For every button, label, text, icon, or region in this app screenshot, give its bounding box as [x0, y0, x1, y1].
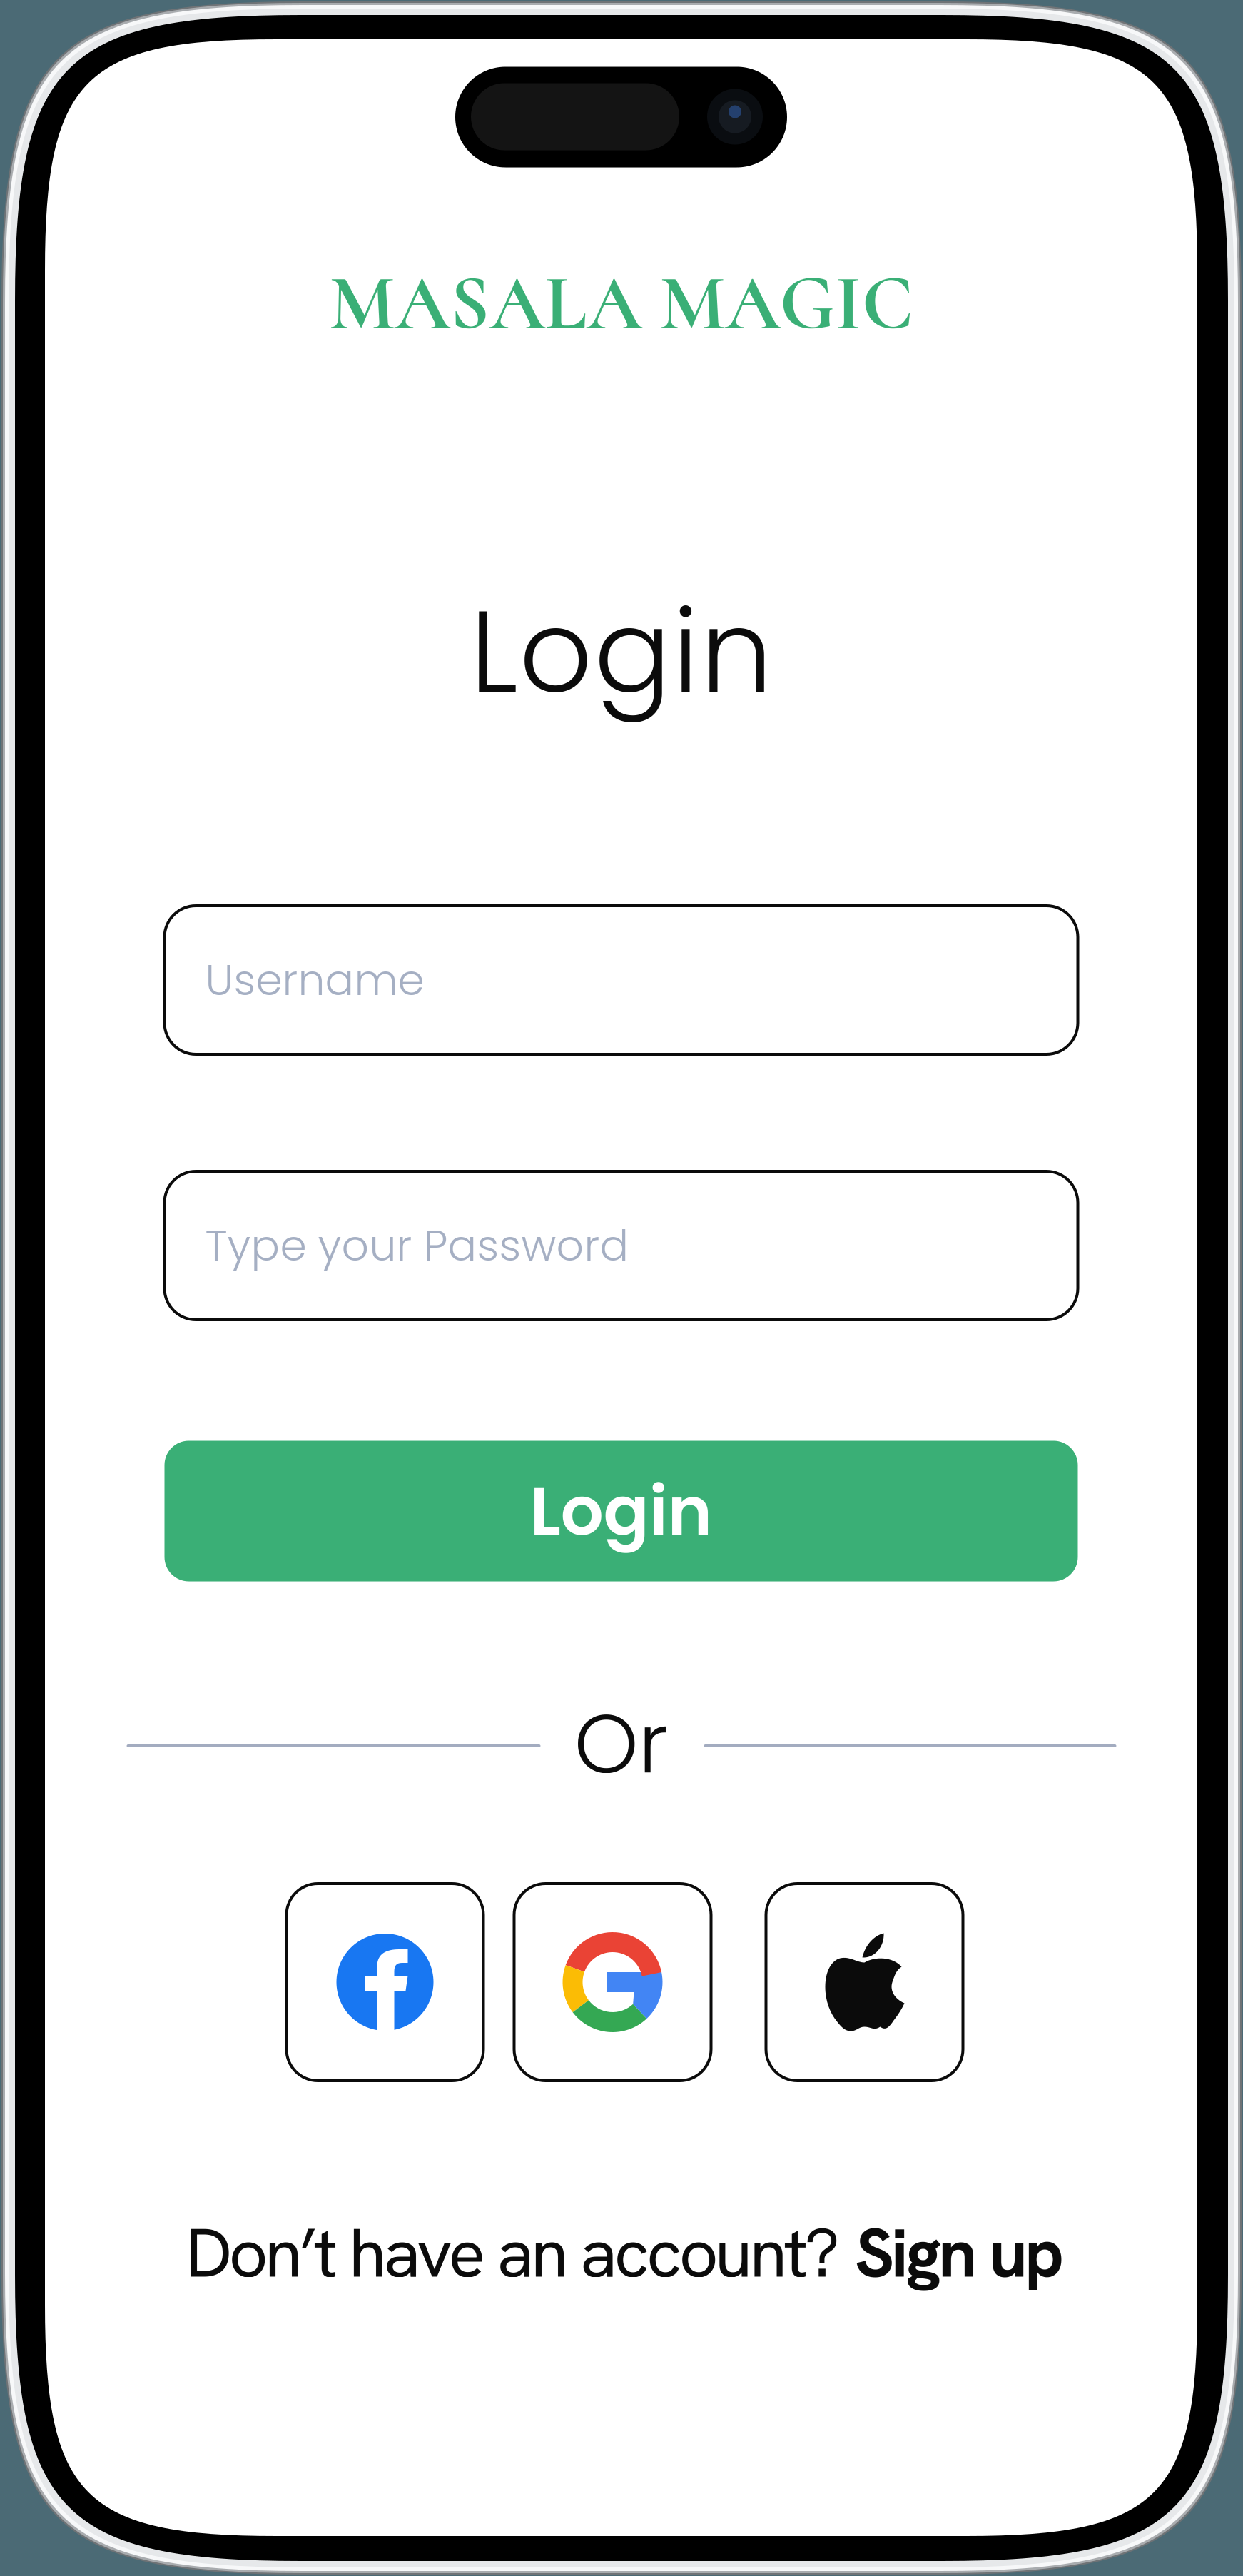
staticText: Or	[574, 1686, 668, 1801]
button[interactable]: Login	[164, 1441, 1078, 1581]
staticText: Sign up	[855, 2208, 1064, 2297]
staticText: Username	[205, 950, 424, 1010]
staticText: Don’t have an account?	[186, 2208, 855, 2297]
button[interactable]: Continue with Facebook	[286, 1884, 483, 2081]
staticText: MASALA MAGIC	[329, 257, 913, 350]
button[interactable]: Continue with Google	[514, 1884, 711, 2081]
staticText: Type your Password	[205, 1216, 629, 1276]
staticText: Login	[470, 572, 772, 732]
button[interactable]: Don’t have an account?	[168, 2203, 1081, 2303]
button[interactable]: Continue with Apple	[766, 1884, 963, 2081]
staticText: Login	[530, 1464, 712, 1558]
